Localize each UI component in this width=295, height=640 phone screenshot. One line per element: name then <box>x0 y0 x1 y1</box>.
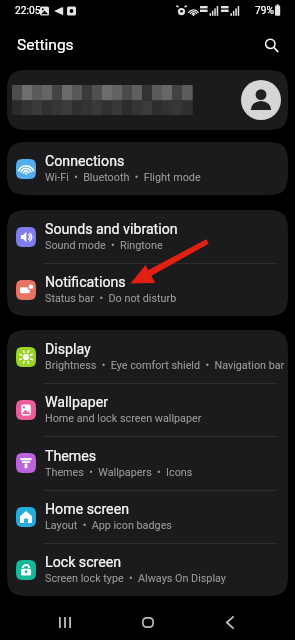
button[interactable]: Search <box>256 30 286 60</box>
staticText: Themes <box>45 448 97 465</box>
button[interactable]: Sounds and vibration <box>7 210 288 263</box>
staticText: Sound mode • Ringtone <box>45 239 163 252</box>
staticText: Status bar • Do not disturb <box>45 292 177 305</box>
staticText: Display <box>45 341 91 358</box>
button[interactable]: Themes <box>7 436 288 490</box>
staticText: Screen lock type • Always On Display <box>45 572 226 585</box>
button[interactable]: Back <box>212 604 248 640</box>
button[interactable]: Profile <box>7 70 288 130</box>
button[interactable]: Wallpaper <box>7 383 288 436</box>
button[interactable]: Notifications <box>7 263 288 316</box>
staticText: Home and lock screen wallpaper <box>45 412 202 425</box>
staticText: Layout • App icon badges <box>45 519 172 532</box>
button[interactable]: Lock screen <box>7 543 288 596</box>
staticText: Wi-Fi • Bluetooth • Flight mode <box>45 171 201 184</box>
staticText: Sounds and vibration <box>45 221 178 238</box>
staticText: Home screen <box>45 501 130 518</box>
staticText: Connections <box>45 153 125 170</box>
button[interactable]: Profile <box>241 80 281 120</box>
staticText: 22:05 <box>15 5 41 17</box>
staticText: Brightness • Eye comfort shield • Naviga… <box>45 359 285 372</box>
button[interactable]: Connections <box>7 142 288 195</box>
staticText: Settings <box>17 36 74 54</box>
staticText: Notifications <box>45 274 126 291</box>
button[interactable]: Display <box>7 330 288 383</box>
button[interactable]: Recent apps <box>47 604 83 640</box>
button[interactable]: Home <box>130 604 166 640</box>
staticText: Lock screen <box>45 554 122 571</box>
button[interactable]: Home screen <box>7 490 288 543</box>
staticText: Themes • Wallpapers • Icons <box>45 466 193 479</box>
staticText: Wallpaper <box>45 394 108 411</box>
staticText: 79% <box>255 5 274 17</box>
